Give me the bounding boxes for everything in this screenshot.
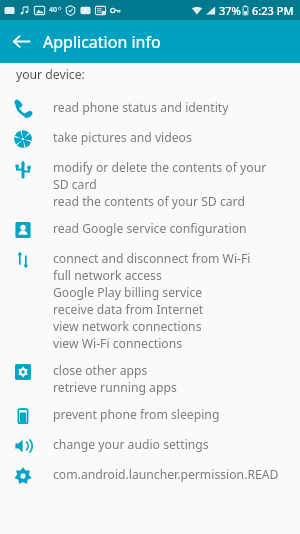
- button[interactable]: Phone: [0, 94, 300, 124]
- staticText: retrieve running apps: [53, 379, 177, 396]
- staticText: receive data from Internet: [53, 301, 204, 318]
- button[interactable]: Storage: [0, 154, 300, 215]
- staticText: Application info: [43, 31, 161, 53]
- staticText: change your audio settings: [53, 436, 209, 453]
- staticText: read Google service configuration: [53, 220, 247, 237]
- staticText: read phone status and identity: [53, 99, 229, 116]
- staticText: SD card: [53, 176, 97, 193]
- staticText: modify or delete the contents of your: [53, 159, 267, 176]
- other: Audio: [13, 436, 33, 456]
- staticText: your device:: [16, 66, 85, 83]
- button[interactable]: Battery: [0, 401, 300, 431]
- button[interactable]: Apps: [0, 357, 300, 401]
- staticText: connect and disconnect from Wi-Fi: [53, 250, 251, 267]
- button[interactable]: Audio: [0, 431, 300, 461]
- other: Storage: [13, 159, 33, 179]
- staticText: 40: [49, 5, 58, 15]
- other: Camera: [13, 129, 33, 149]
- button[interactable]: Camera: [0, 124, 300, 154]
- staticText: full network access: [53, 267, 162, 284]
- staticText: 37%: [219, 3, 241, 18]
- other: Phone: [13, 99, 33, 119]
- staticText: close other apps: [53, 362, 148, 379]
- staticText: prevent phone from sleeping: [53, 406, 220, 423]
- other: Apps: [13, 362, 33, 382]
- other: Other: [13, 466, 33, 486]
- button[interactable]: Other: [0, 461, 300, 491]
- staticText: Google Play billing service: [53, 284, 203, 301]
- button[interactable]: Navigate up: [0, 20, 43, 63]
- other: Network: [13, 250, 33, 270]
- staticText: 6:23 PM: [252, 3, 294, 18]
- staticText: view network connections: [53, 318, 202, 335]
- staticText: com.android.launcher.permission.READ: [53, 466, 279, 483]
- other: Battery: [13, 406, 33, 426]
- staticText: view Wi-Fi connections: [53, 335, 183, 352]
- button[interactable]: Accounts: [0, 215, 300, 245]
- button[interactable]: Network: [0, 245, 300, 357]
- staticText: take pictures and videos: [53, 129, 192, 146]
- staticText: read the contents of your SD card: [53, 193, 245, 210]
- other: Accounts: [13, 220, 33, 240]
